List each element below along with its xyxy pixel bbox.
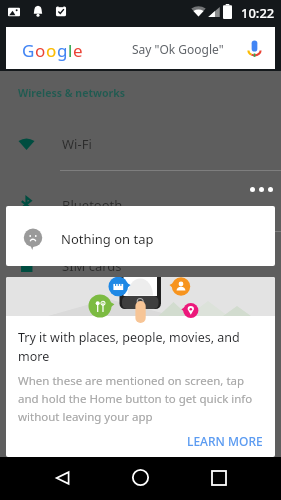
- button[interactable]: Recent apps: [186, 457, 252, 500]
- button[interactable]: Home: [107, 457, 173, 500]
- button[interactable]: Wi-Fi: [0, 113, 281, 174]
- staticText: Try it with places, people, movies, and …: [18, 329, 258, 365]
- staticText: Wi-Fi: [62, 135, 92, 153]
- staticText: l: [68, 39, 73, 62]
- staticText: o: [46, 39, 57, 62]
- button[interactable]: Bluetooth: [0, 174, 281, 235]
- button[interactable]: SIM cards: [0, 235, 281, 296]
- staticText: LEARN MORE: [187, 433, 263, 449]
- button[interactable]: Nothing on tap: [6, 206, 275, 266]
- staticText: Bluetooth: [62, 196, 123, 214]
- other: Voice search: [245, 39, 264, 58]
- staticText: Wireless & networks: [18, 86, 125, 100]
- button[interactable]: Back: [30, 457, 96, 500]
- button[interactable]: G: [6, 27, 275, 69]
- staticText: g: [57, 39, 68, 62]
- staticText: When these are mentioned on screen, tap …: [18, 373, 253, 424]
- staticText: Say "Ok Google": [132, 41, 224, 57]
- staticText: o: [35, 39, 46, 62]
- staticText: 10:22: [241, 4, 275, 22]
- staticText: Nothing on tap: [61, 230, 154, 248]
- staticText: e: [73, 39, 83, 62]
- button[interactable]: More options: [246, 179, 276, 199]
- staticText: SIM cards: [62, 257, 122, 275]
- button[interactable]: LEARN MORE: [179, 429, 271, 453]
- staticText: G: [22, 39, 35, 62]
